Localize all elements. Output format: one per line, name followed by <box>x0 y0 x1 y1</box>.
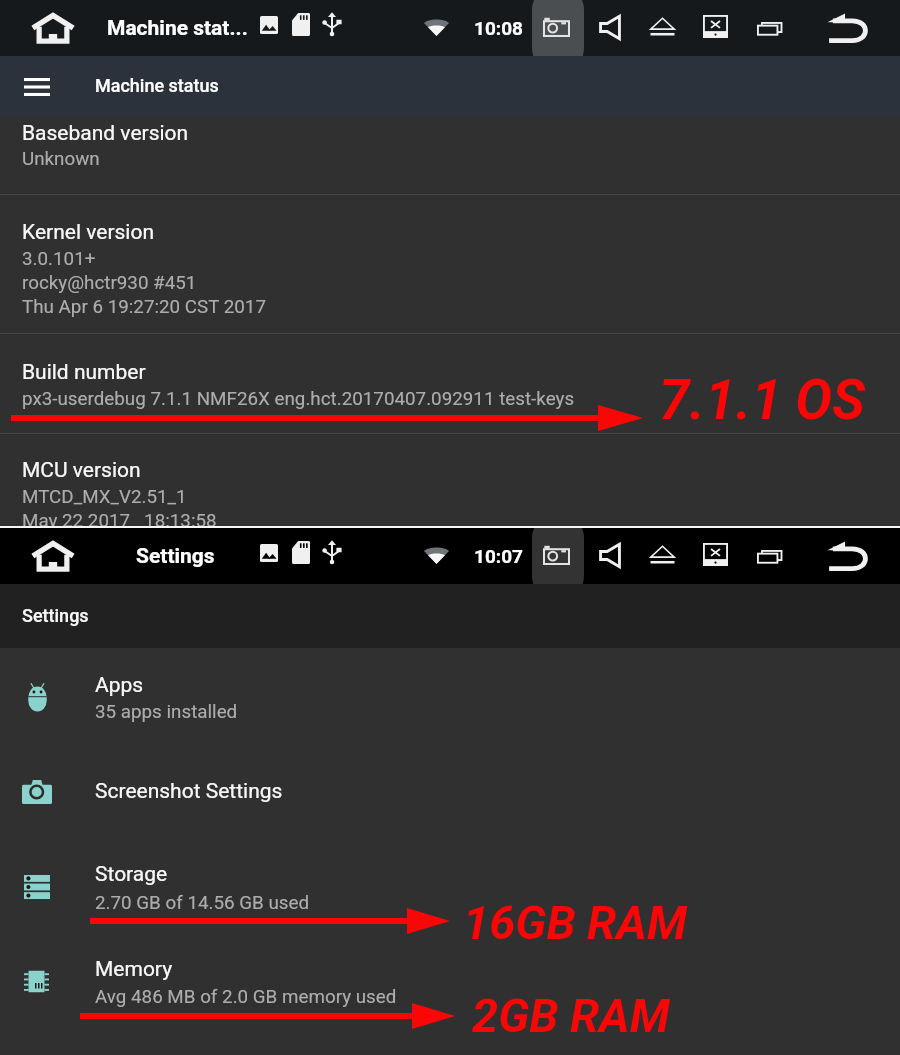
staticText: Memory <box>95 957 173 982</box>
staticText: May 22 2017 18:13:58 <box>22 510 217 532</box>
button[interactable]: Back <box>827 541 869 571</box>
button[interactable] <box>0 195 900 334</box>
button[interactable]: Close screen <box>703 543 728 566</box>
staticText: Storage <box>95 862 168 887</box>
button[interactable] <box>0 117 900 195</box>
button[interactable] <box>0 850 900 930</box>
staticText: Settings <box>136 544 215 569</box>
button[interactable] <box>0 434 900 527</box>
button[interactable]: Eject <box>650 17 675 38</box>
staticText: Avg 486 MB of 2.0 GB memory used <box>95 986 397 1008</box>
staticText: 2.70 GB of 14.56 GB used <box>95 892 310 914</box>
staticText: 3.0.101+ <box>22 248 96 270</box>
staticText: Apps <box>95 673 144 698</box>
button[interactable]: Open navigation menu <box>24 78 50 96</box>
button[interactable]: Screenshot <box>543 545 570 565</box>
button[interactable] <box>0 660 900 740</box>
staticText: 35 apps installed <box>95 701 238 723</box>
staticText: rocky@hctr930 #451 <box>22 272 197 294</box>
staticText: Kernel version <box>22 220 155 245</box>
staticText: Unknown <box>22 148 100 170</box>
staticText: 16GB RAM <box>463 895 687 950</box>
staticText: 10:08 <box>474 17 523 39</box>
staticText: 7.1.1 OS <box>659 368 865 432</box>
staticText: Machine status <box>95 75 219 96</box>
button[interactable]: Home <box>32 13 74 43</box>
staticText: Machine stat... <box>107 16 248 41</box>
staticText: MCU version <box>22 458 141 483</box>
staticText: 10:07 <box>474 545 523 567</box>
staticText: Build number <box>22 360 146 385</box>
button[interactable]: Eject <box>650 545 675 566</box>
staticText: 2GB RAM <box>472 988 670 1043</box>
staticText: Screenshot Settings <box>95 779 283 804</box>
button[interactable]: Back <box>827 13 869 43</box>
staticText: px3-userdebug 7.1.1 NMF26X eng.hct.20170… <box>22 388 575 410</box>
button[interactable] <box>0 945 900 1025</box>
button[interactable]: Screenshot <box>543 17 570 37</box>
staticText: Settings <box>22 605 89 626</box>
button[interactable] <box>0 334 900 434</box>
staticText: MTCD_MX_V2.51_1 <box>22 486 187 508</box>
button[interactable]: Volume <box>599 543 621 568</box>
button[interactable]: Home <box>32 541 74 571</box>
staticText: Thu Apr 6 19:27:20 CST 2017 <box>22 296 266 318</box>
button[interactable] <box>0 760 900 820</box>
button[interactable]: Recent apps <box>757 550 782 563</box>
staticText: Baseband version <box>22 121 189 146</box>
button[interactable]: Volume <box>599 15 621 40</box>
button[interactable]: Recent apps <box>757 22 782 35</box>
button[interactable]: Close screen <box>703 15 728 38</box>
